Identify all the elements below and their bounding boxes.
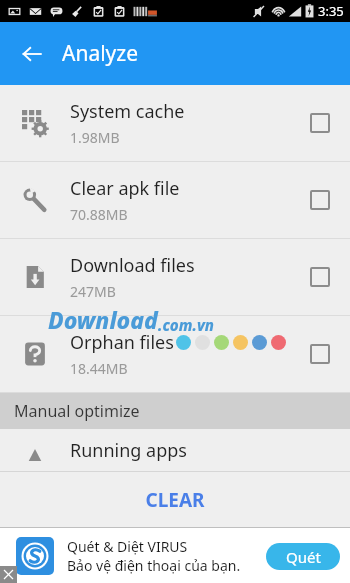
staticText: Running apps	[70, 438, 187, 463]
staticText: 18.44MB	[70, 359, 128, 378]
button[interactable]: Quét	[266, 543, 340, 570]
staticText: System cache	[70, 99, 185, 124]
button[interactable]: Back	[10, 32, 54, 76]
staticText: 3:35	[318, 2, 344, 20]
staticText: Manual optimize	[14, 400, 140, 422]
staticText: 70.88MB	[70, 205, 128, 224]
button[interactable]: Select Download files	[290, 239, 350, 315]
staticText: Bảo vệ điện thoại của bạn.	[67, 556, 241, 575]
button[interactable]: Close ad	[0, 566, 17, 583]
button[interactable]: System cache	[0, 85, 350, 161]
staticText: Quét	[286, 547, 321, 567]
button[interactable]: Select Clear apk file	[290, 162, 350, 238]
button[interactable]: Download files	[0, 239, 350, 315]
button[interactable]: Clear apk file	[0, 162, 350, 238]
staticText: Clear apk file	[70, 176, 180, 201]
staticText: Download files	[70, 253, 195, 278]
staticText: .com.vn	[158, 315, 214, 335]
other: Antivirus app icon	[16, 537, 54, 575]
button[interactable]: CLEAR	[0, 472, 350, 527]
staticText: Orphan files	[70, 330, 174, 355]
staticText: Download	[48, 304, 158, 335]
staticText: 247MB	[70, 282, 116, 301]
button[interactable]: Select System cache	[290, 85, 350, 161]
button[interactable]: Orphan files	[0, 316, 350, 392]
staticText: CLEAR	[145, 487, 205, 513]
button[interactable]: Select Orphan files	[290, 316, 350, 392]
staticText: Quét & Diệt VIRUS	[67, 537, 188, 556]
staticText: 1.98MB	[70, 128, 120, 147]
staticText: Analyze	[62, 39, 139, 68]
button[interactable]: Running apps	[0, 429, 350, 471]
